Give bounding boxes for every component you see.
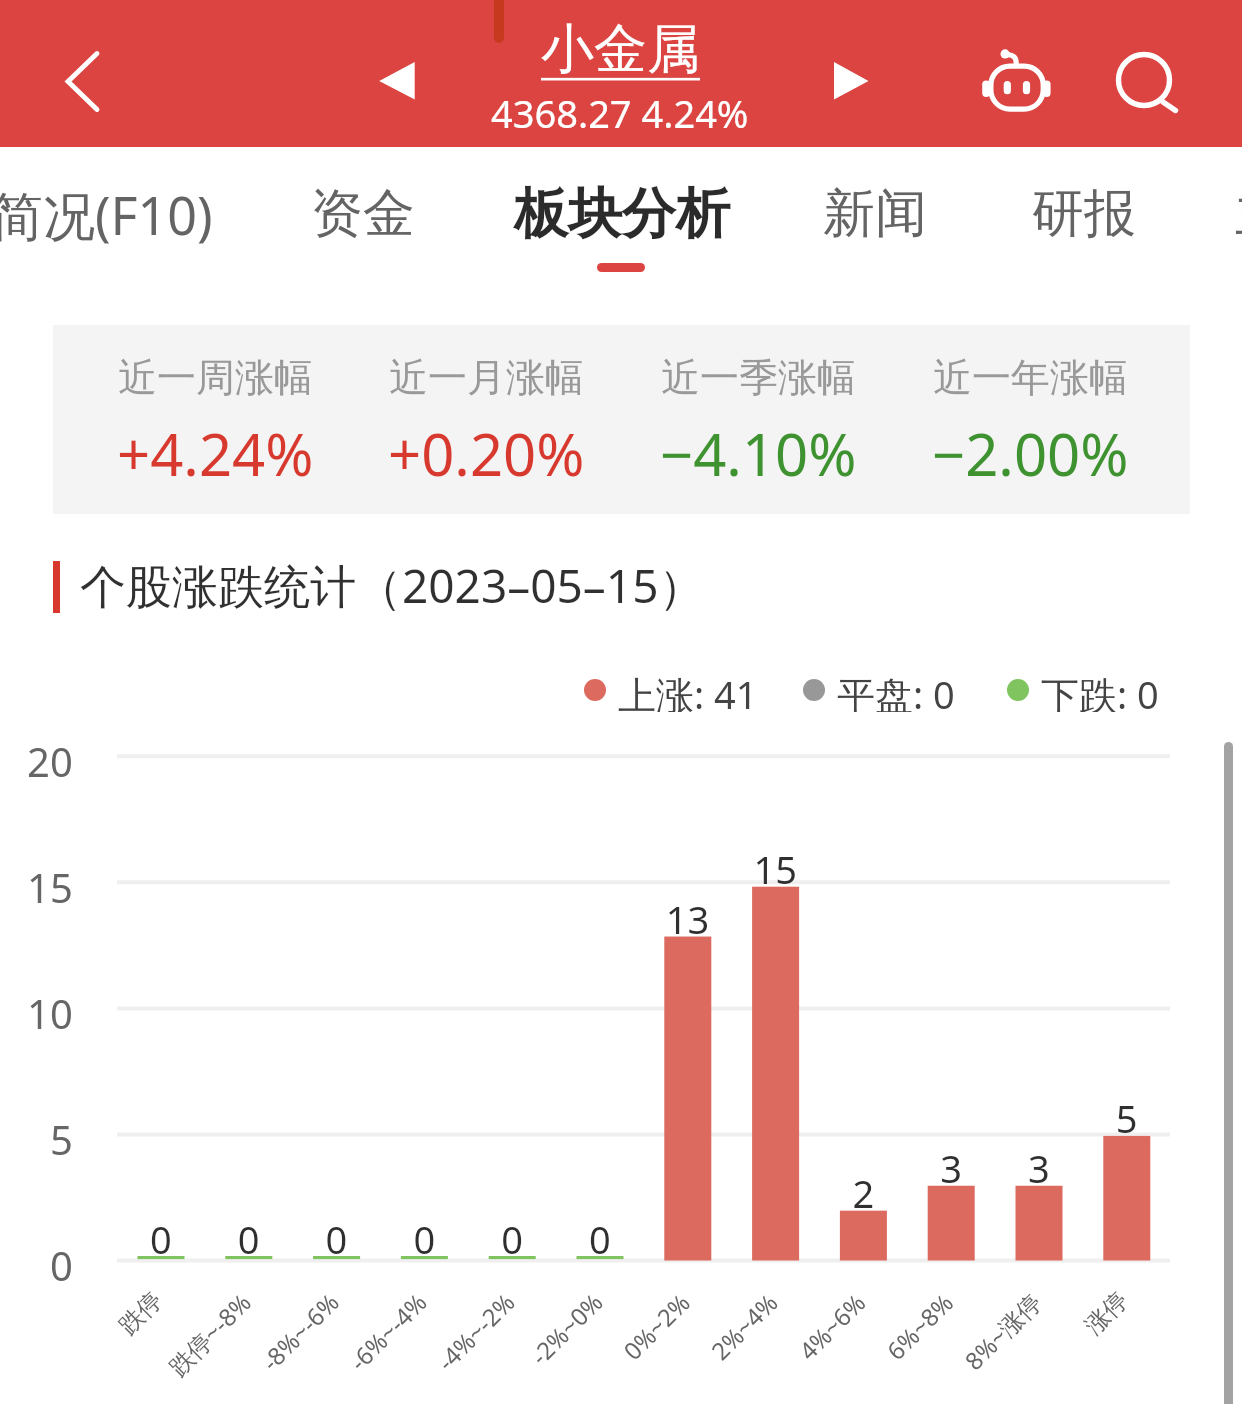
staticText: 资金	[311, 181, 415, 247]
button[interactable]: 主力	[1122, 140, 1242, 288]
staticText: 4368.27 4.24%	[491, 87, 749, 139]
button[interactable]: 近一月涨幅	[351, 325, 622, 514]
staticText: −2.00%	[932, 414, 1129, 493]
button[interactable]: 近一周涨幅	[80, 325, 351, 514]
staticText: −4.10%	[660, 414, 857, 493]
staticText: +0.20%	[388, 414, 585, 493]
staticText: 简况(F10)	[0, 179, 213, 250]
button[interactable]: 近一年涨幅	[894, 325, 1166, 514]
staticText: 主力	[1235, 181, 1242, 247]
staticText: 近一年涨幅	[933, 353, 1128, 402]
button[interactable]: Back	[28, 28, 128, 128]
staticText: 近一季涨幅	[661, 353, 856, 402]
staticText: 近一月涨幅	[389, 353, 584, 402]
button[interactable]: Search	[1098, 30, 1194, 120]
button[interactable]: 新闻	[710, 140, 1040, 288]
button[interactable]: 板块分析	[457, 140, 787, 288]
button[interactable]: 研报	[919, 140, 1242, 288]
staticText: 板块分析	[514, 180, 730, 248]
button[interactable]: AI assistant	[967, 34, 1067, 124]
staticText: 新闻	[823, 181, 927, 247]
button[interactable]: 小金属	[420, 16, 820, 141]
staticText: 上涨: 41	[618, 668, 758, 712]
button[interactable]: Previous sector	[359, 52, 429, 112]
staticText: 个股涨跌统计（2023–05–15）	[80, 554, 705, 617]
staticText: 平盘: 0	[837, 668, 955, 712]
staticText: +4.24%	[117, 414, 314, 493]
button[interactable]: Next sector	[814, 52, 884, 112]
button[interactable]: 近一季涨幅	[622, 325, 894, 514]
button[interactable]: 简况(F10)	[0, 140, 213, 288]
staticText: 下跌: 0	[1041, 668, 1159, 712]
staticText: 研报	[1032, 181, 1136, 247]
button[interactable]: 资金	[198, 140, 528, 288]
staticText: 近一周涨幅	[118, 353, 313, 402]
staticText: 小金属	[541, 16, 700, 83]
